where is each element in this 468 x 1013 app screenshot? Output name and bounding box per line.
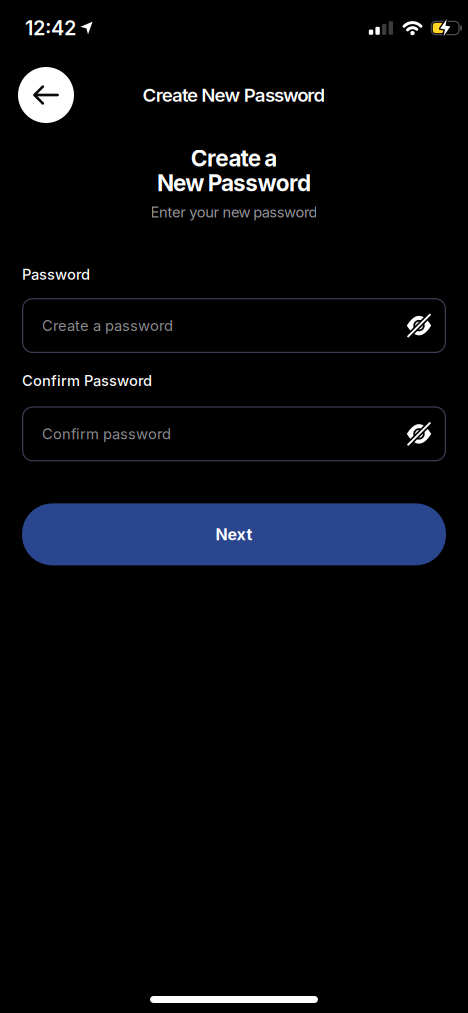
- staticText: Confirm password: [42, 425, 171, 442]
- button[interactable]: Next: [22, 503, 446, 565]
- button[interactable]: Create a password: [22, 298, 446, 353]
- button[interactable]: [18, 67, 74, 123]
- staticText: Enter your new password: [150, 203, 317, 221]
- staticText: Create a: [191, 145, 277, 172]
- staticText: Create New Password: [143, 84, 325, 106]
- staticText: Confirm Password: [22, 372, 152, 389]
- staticText: New Password: [157, 170, 311, 196]
- staticText: 12:42: [25, 16, 76, 40]
- staticText: Create a password: [42, 317, 173, 334]
- staticText: Next: [215, 525, 252, 544]
- staticText: Password: [22, 266, 90, 283]
- button[interactable]: Confirm password: [22, 406, 446, 461]
